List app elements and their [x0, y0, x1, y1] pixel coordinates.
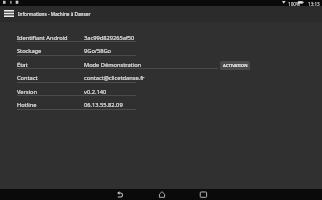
staticText: Identifiant Android: [17, 34, 68, 42]
button[interactable]: Back: [114, 189, 126, 200]
staticText: ACTIVATION: [223, 63, 248, 69]
button[interactable]: [17, 28, 136, 42]
button[interactable]: [17, 42, 136, 56]
staticText: contact@clicetdanse.fr: [84, 74, 145, 82]
staticText: v0.2.140: [84, 88, 107, 96]
staticText: Contact: [17, 74, 38, 82]
staticText: État: [17, 61, 28, 69]
button[interactable]: [17, 55, 218, 69]
button[interactable]: [17, 82, 136, 96]
button[interactable]: ACTIVATION: [220, 61, 250, 70]
staticText: Version: [17, 88, 38, 96]
button[interactable]: [17, 96, 136, 110]
staticText: Mode Démonstration: [84, 61, 142, 69]
staticText: 100%: [288, 1, 300, 7]
button[interactable]: Recent apps: [197, 189, 209, 200]
button[interactable]: [17, 69, 136, 83]
staticText: 13:13: [308, 1, 320, 7]
staticText: Informations - Machine à Danser: [18, 11, 91, 17]
staticText: 9Go/58Go: [84, 47, 112, 55]
staticText: 3ac99d829265af50: [84, 34, 135, 42]
button[interactable]: Home: [156, 189, 168, 200]
button[interactable]: Open navigation drawer: [0, 7, 18, 22]
staticText: Hotline: [17, 101, 37, 109]
staticText: Stockage: [17, 47, 42, 55]
staticText: 06.13.55.82.09: [84, 101, 123, 109]
